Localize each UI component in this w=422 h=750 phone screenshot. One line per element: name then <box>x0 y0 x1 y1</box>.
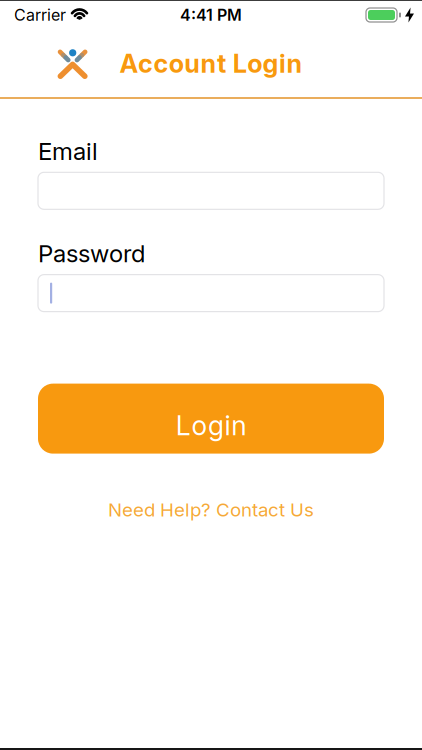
staticText: Login <box>176 410 246 441</box>
staticText: Email <box>38 137 98 165</box>
staticText: Password <box>38 239 145 268</box>
staticText: Need Help? Contact Us <box>108 499 314 521</box>
button[interactable]: Login <box>38 384 384 454</box>
secureTextField[interactable] <box>50 280 372 306</box>
staticText: Account Login <box>120 49 302 78</box>
staticText: Carrier <box>14 6 66 24</box>
button[interactable]: Need Help? Contact Us <box>108 499 314 521</box>
staticText: 4:41 PM <box>180 6 242 24</box>
